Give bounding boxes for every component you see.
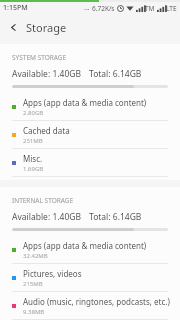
button[interactable]: Apps (app data & media content) bbox=[0, 236, 180, 263]
staticText: Cached data bbox=[23, 125, 70, 136]
staticText: Misc. bbox=[23, 153, 43, 164]
staticText: Apps (app data & media content) bbox=[23, 97, 147, 108]
staticText: SYSTEM STORAGE bbox=[12, 53, 67, 62]
button[interactable]: Cached data bbox=[0, 121, 180, 148]
staticText: Storage bbox=[26, 20, 67, 35]
staticText: 9.38MB bbox=[23, 308, 45, 316]
button[interactable]: Audio (music, ringtones, podcasts, etc.) bbox=[0, 292, 180, 319]
staticText: INTERNAL STORAGE bbox=[12, 196, 74, 205]
staticText: 6.72K/s bbox=[92, 4, 115, 13]
staticText: Available: 1.40GB bbox=[12, 211, 81, 223]
button[interactable]: Pictures, videos bbox=[0, 264, 180, 291]
button[interactable]: Misc. bbox=[0, 149, 180, 176]
staticText: Apps (app data & media content) bbox=[23, 240, 147, 251]
staticText: 251MB bbox=[23, 137, 43, 145]
staticText: 1.69GB bbox=[23, 165, 44, 173]
staticText: LTE bbox=[166, 4, 177, 13]
staticText: Total: 6.14GB bbox=[89, 211, 142, 223]
staticText: Total: 6.14GB bbox=[89, 68, 142, 80]
staticText: 32.42MB bbox=[23, 252, 48, 260]
staticText: ... bbox=[84, 3, 90, 13]
staticText: 215MB bbox=[23, 280, 43, 288]
staticText: TM bbox=[145, 4, 155, 13]
staticText: 1:15PM bbox=[3, 3, 28, 13]
button[interactable]: Apps (app data & media content) bbox=[0, 93, 180, 120]
staticText: Available: 1.40GB bbox=[12, 68, 81, 80]
staticText: Audio (music, ringtones, podcasts, etc.) bbox=[23, 296, 170, 307]
button[interactable]: Back bbox=[0, 14, 26, 40]
staticText: 2.80GB bbox=[23, 109, 44, 117]
staticText: Pictures, videos bbox=[23, 268, 82, 279]
